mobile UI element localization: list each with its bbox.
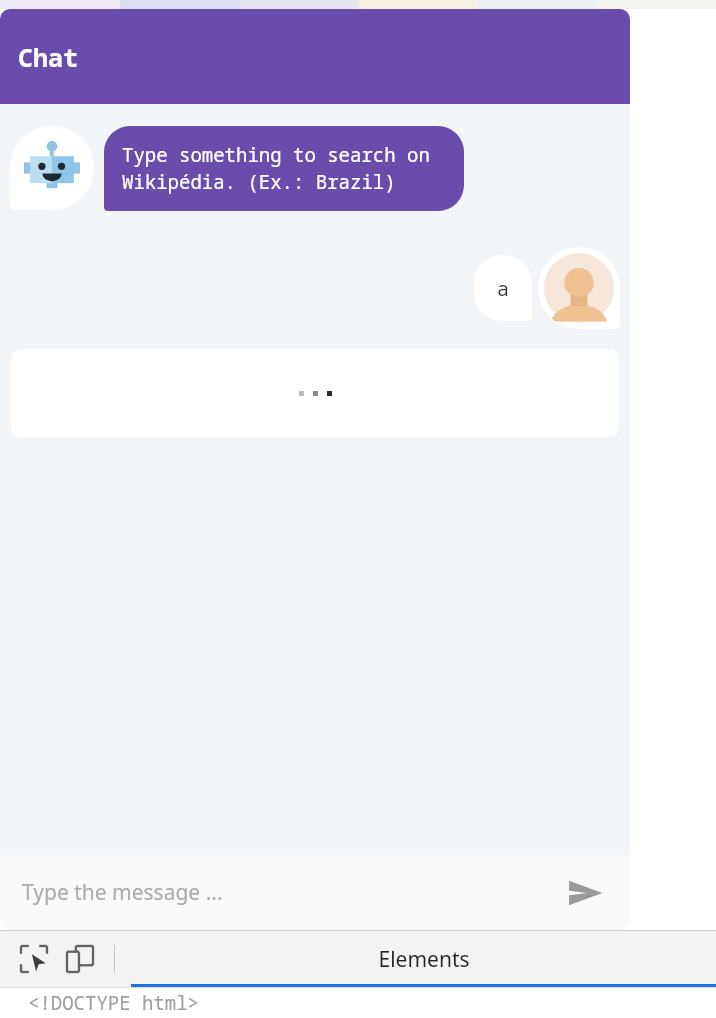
button[interactable]: Type something to search on Wikipédia. (… [122,142,446,195]
button[interactable]: Send [562,870,608,916]
button[interactable]: Elements [131,931,716,987]
staticText: a [497,275,509,302]
button[interactable]: a [474,255,532,321]
button[interactable]: Inspect element [14,939,54,979]
staticText: <!DOCTYPE html> [28,990,200,1016]
button[interactable]: Type the message ... [0,855,630,930]
button[interactable]: Toggle device toolbar [60,939,100,979]
staticText: Type the message ... [22,878,562,907]
staticText: Type something to search on Wikipédia. (… [122,142,446,195]
button[interactable]: Chat [0,9,630,104]
staticText: Elements [378,945,470,974]
other: User avatar [538,247,620,329]
button[interactable] [11,349,619,437]
other: Bot avatar [10,126,94,210]
staticText: Chat [18,40,79,74]
